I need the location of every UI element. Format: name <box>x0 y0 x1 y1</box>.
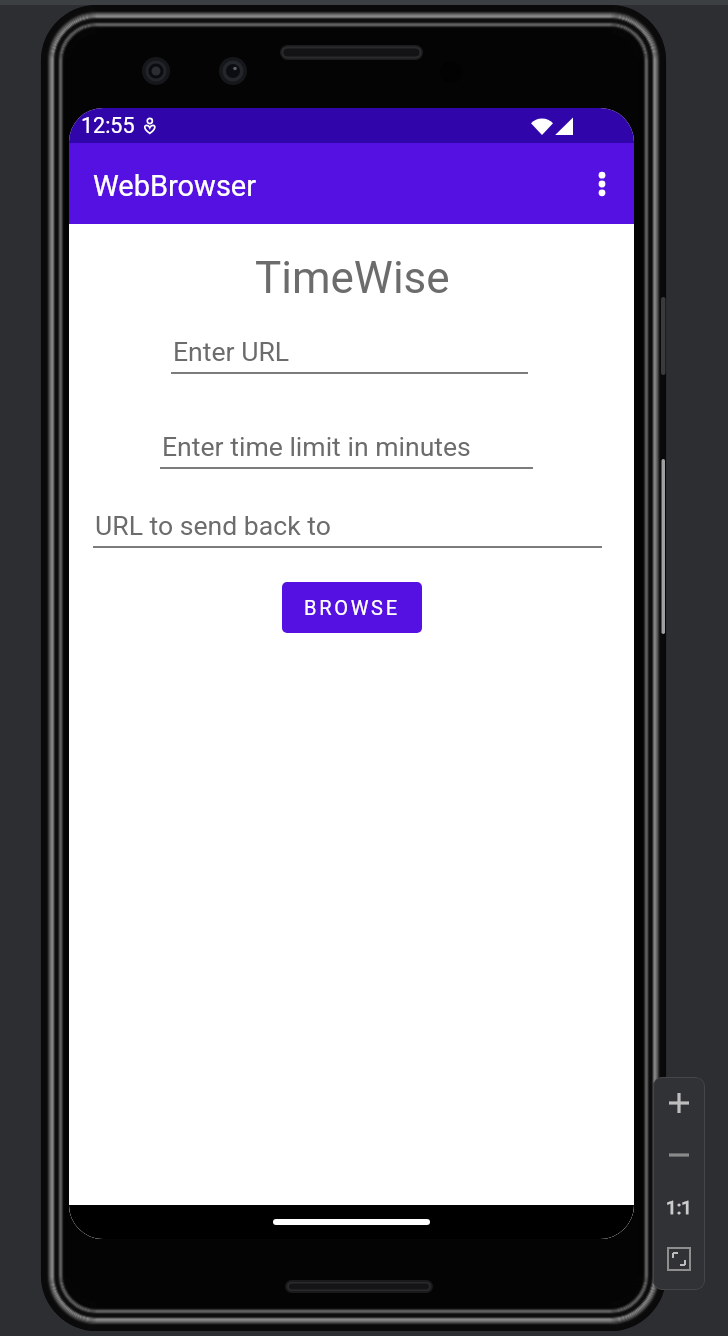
button[interactable]: URL to send back to <box>93 511 602 551</box>
staticText: Enter time limit in minutes <box>162 431 471 462</box>
staticText: WebBrowser <box>93 169 257 203</box>
button[interactable]: BROWSE <box>282 582 422 633</box>
button[interactable]: Zoom in <box>653 1077 705 1129</box>
button[interactable]: Enter URL <box>171 337 528 377</box>
staticText: 1:1 <box>666 1196 692 1218</box>
staticText: 12:55 <box>81 113 135 138</box>
button[interactable]: Zoom out <box>653 1129 705 1181</box>
staticText: Enter URL <box>173 336 290 367</box>
staticText: URL to send back to <box>95 510 331 541</box>
button[interactable]: Actual size <box>653 1181 705 1233</box>
button[interactable]: More options <box>574 156 630 212</box>
staticText: TimeWise <box>255 252 450 304</box>
button[interactable]: Fit to window <box>653 1233 705 1285</box>
staticText: BROWSE <box>304 596 400 619</box>
button[interactable]: Enter time limit in minutes <box>160 432 533 472</box>
